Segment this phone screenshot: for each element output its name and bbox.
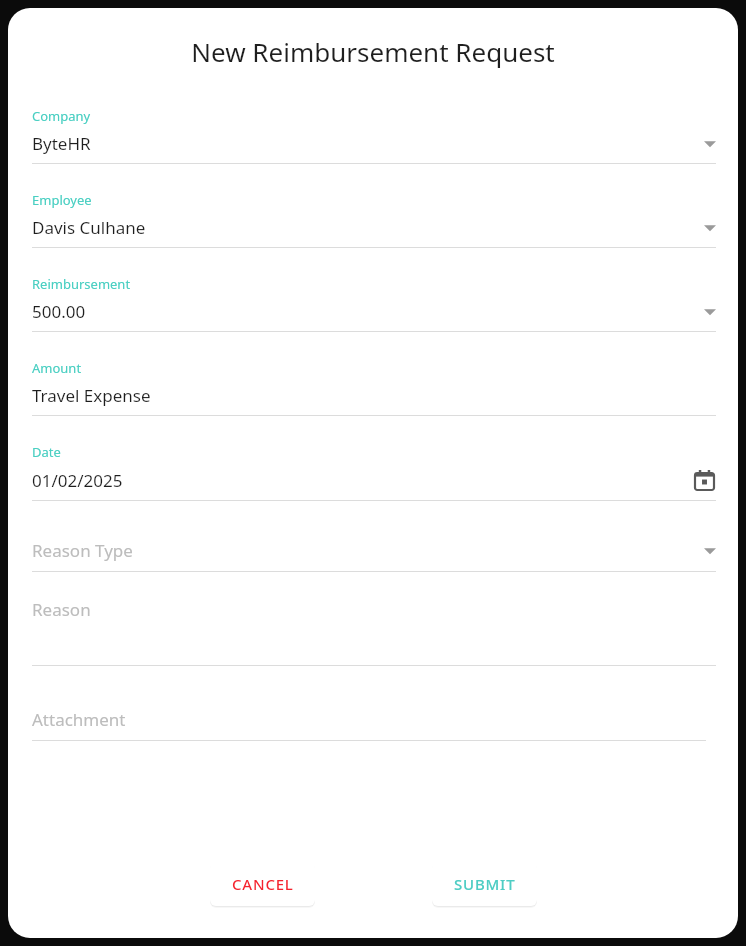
- button[interactable]: SUBMIT: [432, 862, 537, 906]
- staticText: New Reimbursement Request: [8, 34, 738, 69]
- staticText: Reason: [32, 598, 91, 621]
- staticText: Employee: [32, 191, 92, 209]
- staticText: Amount: [32, 359, 82, 377]
- staticText: 01/02/2025: [32, 469, 693, 492]
- staticText: Davis Culhane: [32, 216, 704, 239]
- staticText: Reason Type: [32, 539, 704, 562]
- button[interactable]: Date: [32, 443, 716, 501]
- button[interactable]: CANCEL: [210, 862, 315, 906]
- staticText: Travel Expense: [32, 384, 716, 407]
- staticText: Attachment: [32, 708, 126, 731]
- button[interactable]: Reason Type: [32, 539, 716, 572]
- button[interactable]: Pick date: [693, 468, 716, 492]
- button[interactable]: Employee: [32, 191, 716, 248]
- button[interactable]: Reimbursement: [32, 275, 716, 332]
- button[interactable]: Company: [32, 107, 716, 164]
- button[interactable]: Amount: [32, 359, 716, 416]
- staticText: Company: [32, 107, 91, 125]
- staticText: Reimbursement: [32, 275, 131, 293]
- button[interactable]: Reason: [32, 598, 716, 666]
- button[interactable]: Attachment: [32, 708, 706, 741]
- staticText: SUBMIT: [454, 874, 516, 894]
- staticText: CANCEL: [232, 874, 294, 894]
- staticText: 500.00: [32, 300, 704, 323]
- staticText: ByteHR: [32, 132, 704, 155]
- staticText: Date: [32, 443, 61, 461]
